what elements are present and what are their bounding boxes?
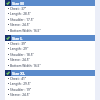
staticText: Chest : 37" <box>10 7 27 11</box>
button[interactable]: Sleeve : 24.5" <box>5 57 95 62</box>
staticText: Size M <box>12 1 24 6</box>
button[interactable]: Length : 29" <box>5 46 95 51</box>
button[interactable]: Length : 28.5" <box>5 11 95 16</box>
button[interactable]: Shoulder : 17.5" <box>5 17 95 22</box>
button[interactable]: Chest : 41" <box>5 76 95 81</box>
staticText: Length : 29.5" <box>10 82 31 86</box>
staticText: Length : 28.5" <box>10 12 31 16</box>
other: Verified <box>5 70 11 76</box>
button[interactable]: Verified <box>5 35 95 41</box>
staticText: Bottom Width: 16.5" <box>10 64 41 68</box>
other: Verified <box>5 0 11 6</box>
staticText: Sleeve : 24.5" <box>10 93 30 97</box>
staticText: Shoulder : 18.5" <box>10 53 34 57</box>
staticText: Bottom Width: 16.5" <box>10 29 41 33</box>
staticText: Size XL <box>12 71 26 76</box>
staticText: Shoulder : 19" <box>10 88 32 92</box>
staticText: Sleeve : 24.5" <box>10 58 30 62</box>
staticText: Shoulder : 17.5" <box>10 18 34 22</box>
button[interactable]: Sleeve : 24.5" <box>5 92 95 97</box>
staticText: Chest : 41" <box>10 77 27 81</box>
button[interactable]: Shoulder : 18.5" <box>5 52 95 57</box>
staticText: Chest : 39" <box>10 42 27 46</box>
button[interactable]: Chest : 39" <box>5 41 95 46</box>
button[interactable]: Bottom Width: 16.5" <box>5 63 95 68</box>
button[interactable]: Verified <box>5 70 95 76</box>
other: Verified <box>5 35 11 41</box>
button[interactable]: Shoulder : 19" <box>5 87 95 92</box>
staticText: Size L <box>12 36 23 41</box>
button[interactable]: Length : 29.5" <box>5 81 95 86</box>
staticText: Length : 29" <box>10 47 29 51</box>
button[interactable]: Sleeve : 24.5" <box>5 22 95 27</box>
staticText: Sleeve : 24.5" <box>10 23 30 27</box>
button[interactable]: Verified <box>5 0 95 6</box>
button[interactable]: Bottom Width: 16.5" <box>5 28 95 33</box>
button[interactable]: Chest : 37" <box>5 6 95 11</box>
